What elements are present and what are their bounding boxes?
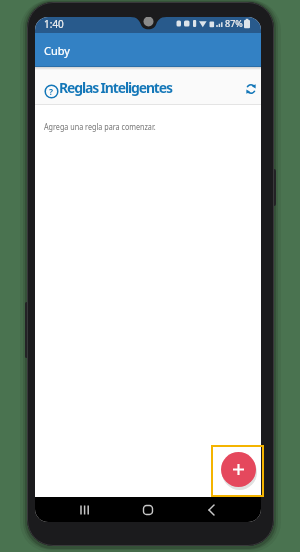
button[interactable]: ? (44, 84, 59, 99)
staticText: Cuby (44, 43, 70, 58)
staticText: 1:40 (44, 17, 64, 31)
staticText: Agrega una regla para comenzar. (44, 121, 156, 132)
staticText: 87% (225, 17, 243, 29)
staticText: Reglas Inteligentes (59, 78, 172, 97)
staticText: ? (49, 86, 54, 98)
button[interactable] (71, 497, 99, 522)
button[interactable] (198, 497, 226, 522)
button[interactable] (134, 497, 162, 522)
button[interactable] (221, 452, 256, 487)
button[interactable] (242, 80, 260, 98)
